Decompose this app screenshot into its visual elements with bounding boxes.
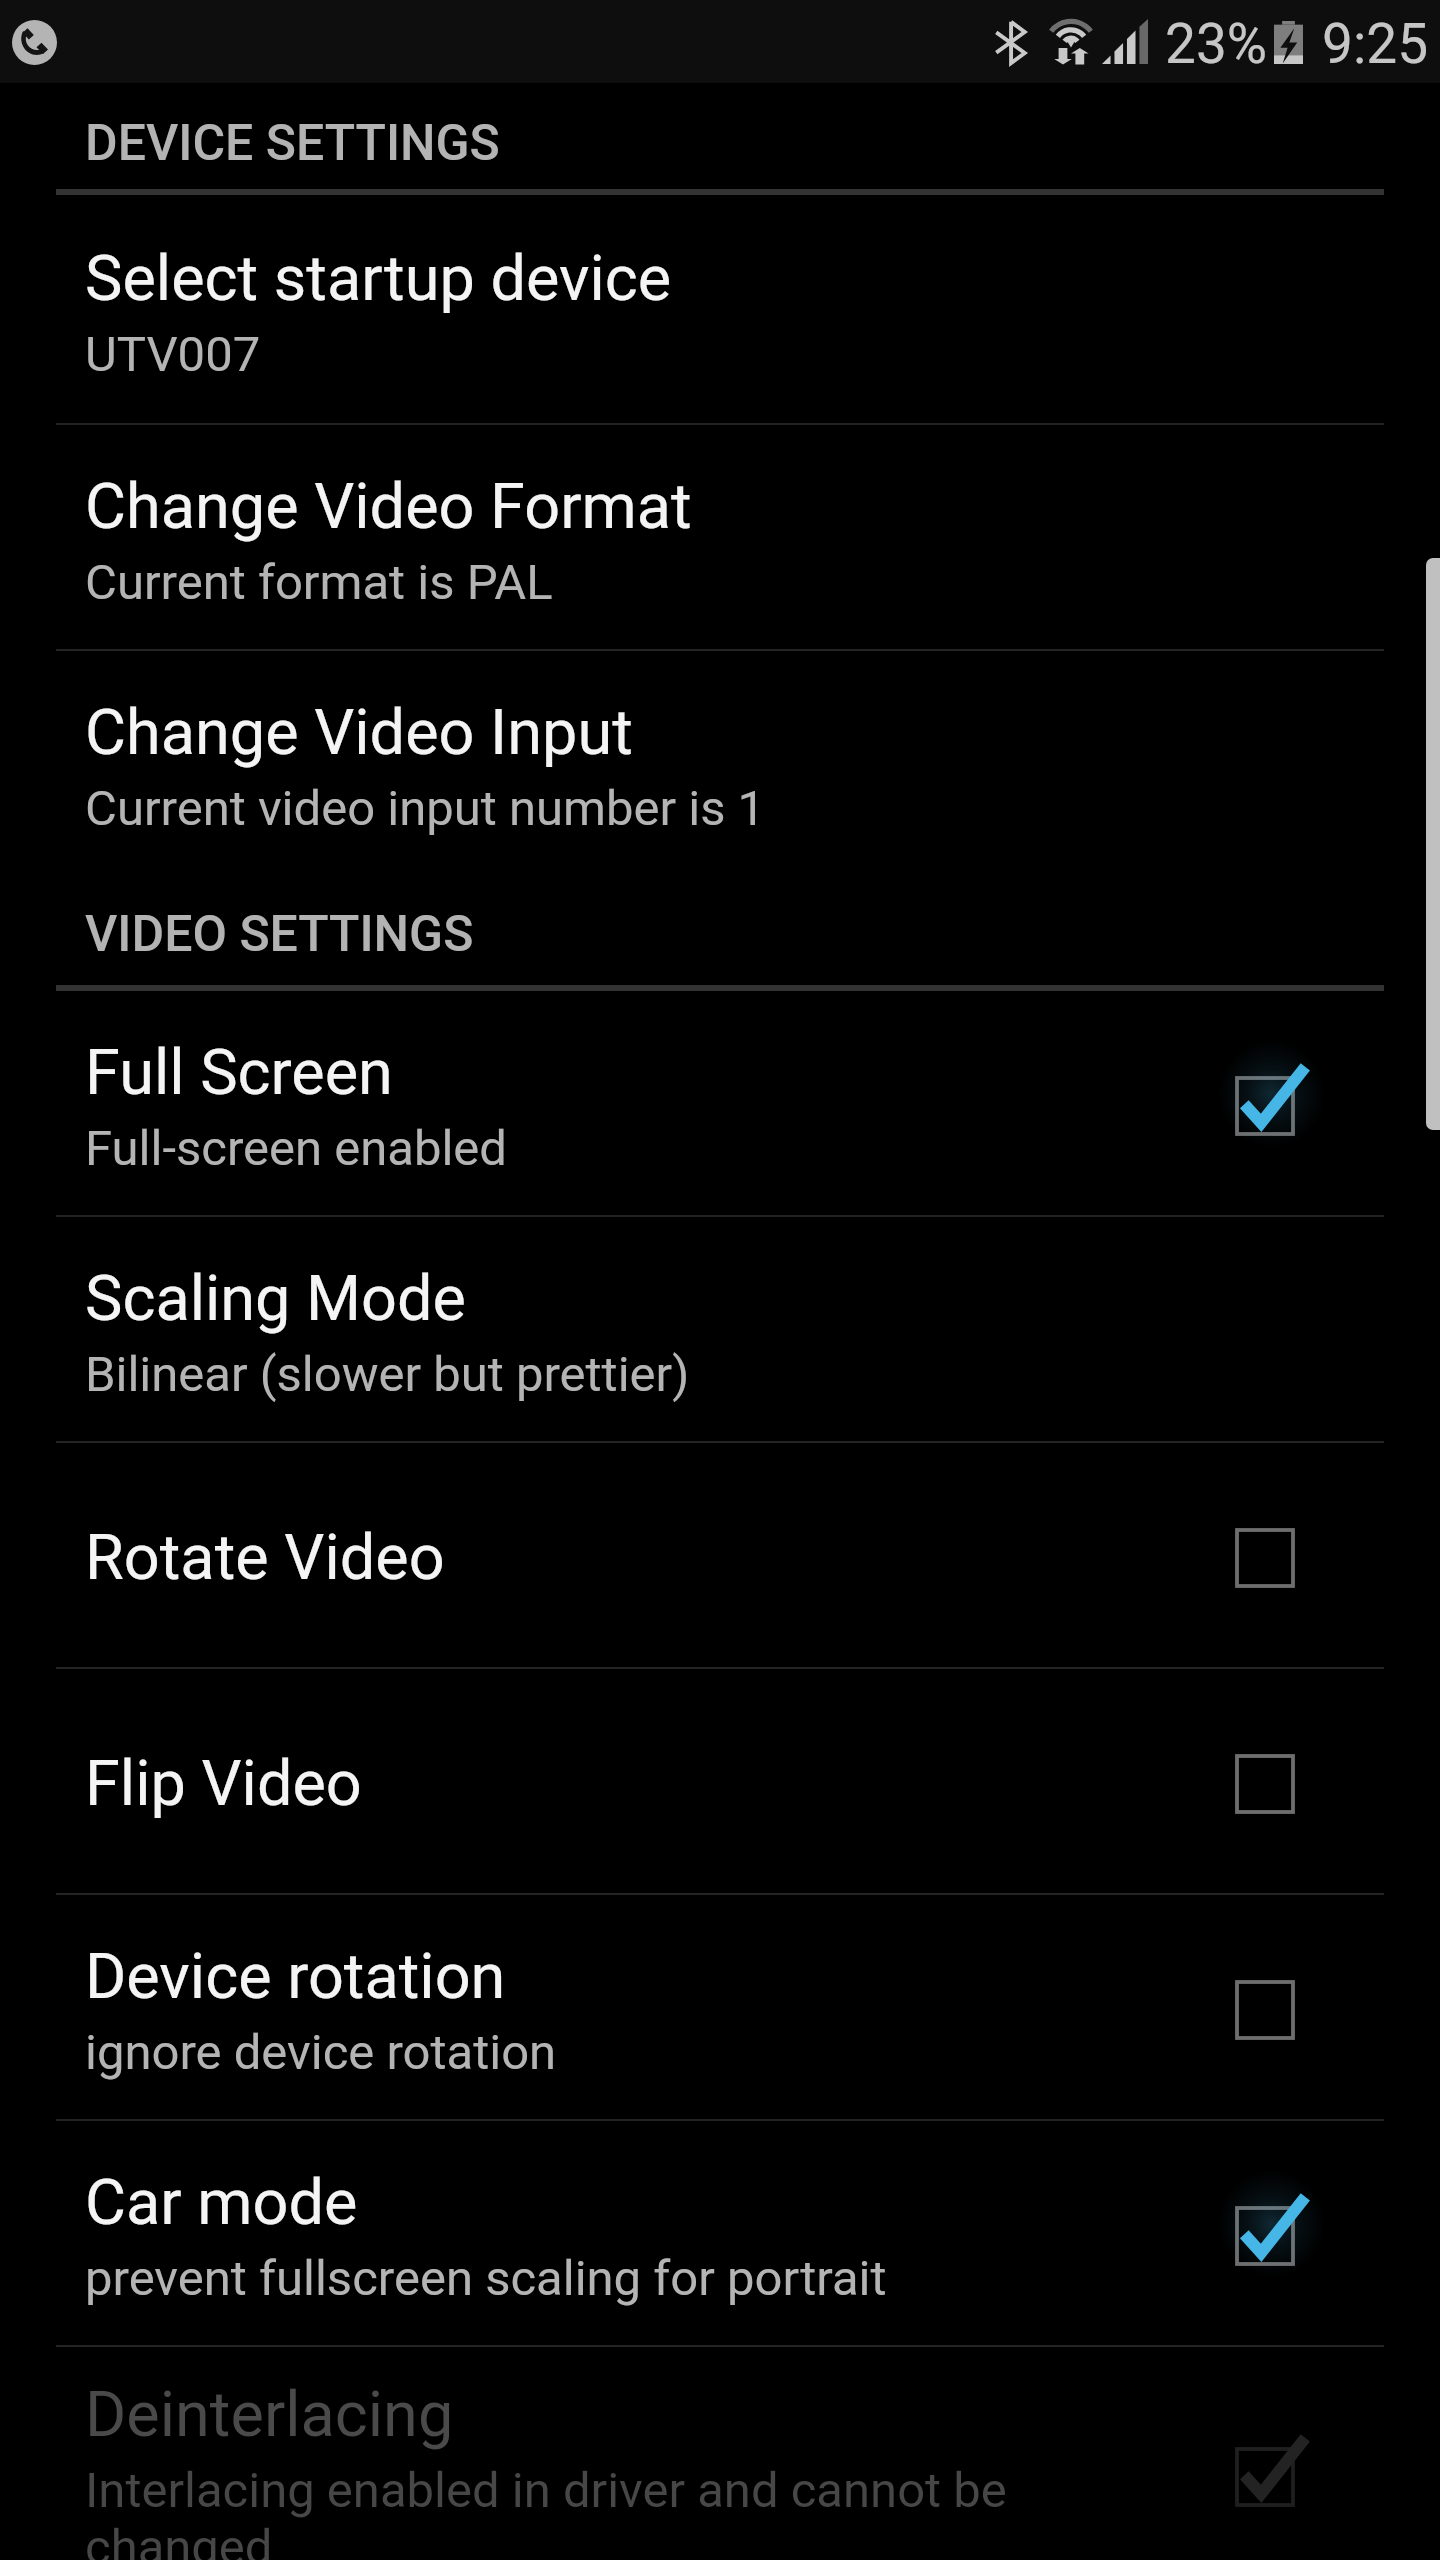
staticText: Change Video Input — [85, 696, 633, 770]
button[interactable]: Full Screen — [0, 991, 1440, 1215]
staticText: Interlacing enabled in driver and cannot… — [85, 2462, 1007, 2560]
other: Mobile signal — [1102, 19, 1148, 64]
staticText: Current video input number is 1 — [85, 780, 766, 837]
staticText: UTV007 — [85, 326, 261, 383]
staticText: Current format is PAL — [85, 554, 553, 611]
button[interactable]: Car mode — [0, 2121, 1440, 2345]
button[interactable]: Flip Video — [0, 1669, 1440, 1893]
staticText: prevent fullscreen scaling for portrait — [85, 2250, 887, 2307]
button[interactable]: Select startup device — [0, 195, 1440, 423]
staticText: 9:25 — [1322, 12, 1429, 76]
button[interactable]: Rotate Video, not checked — [1235, 1510, 1355, 1606]
button[interactable]: Rotate Video — [0, 1443, 1440, 1667]
other: Bluetooth on — [996, 21, 1025, 64]
other: Wi-Fi connected — [1051, 14, 1091, 60]
staticText: DEVICE SETTINGS — [85, 114, 500, 173]
staticText: ignore device rotation — [85, 2024, 557, 2081]
staticText: Full Screen — [85, 1036, 393, 1110]
staticText: Device rotation — [85, 1940, 506, 2014]
staticText: Select startup device — [85, 242, 672, 316]
staticText: Change Video Format — [85, 470, 692, 544]
button[interactable]: Deinterlacing, checked — [1235, 2429, 1355, 2525]
staticText: Scaling Mode — [85, 1262, 466, 1336]
staticText: Rotate Video — [85, 1521, 445, 1595]
button[interactable]: Scaling Mode — [0, 1217, 1440, 1441]
button[interactable]: Device rotation, not checked — [1235, 1962, 1355, 2058]
staticText: 23% — [1165, 12, 1268, 76]
button[interactable]: Car mode, checked — [1235, 2188, 1355, 2284]
staticText: VIDEO SETTINGS — [85, 905, 474, 964]
other: Battery charging, 23 percent — [1274, 21, 1303, 64]
button[interactable]: Deinterlacing — [0, 2347, 1440, 2560]
staticText: Flip Video — [85, 1747, 362, 1821]
button[interactable]: Change Video Input — [0, 651, 1440, 875]
other: Ongoing call — [12, 20, 57, 65]
button[interactable]: Full Screen, checked — [1235, 1058, 1355, 1154]
staticText: Deinterlacing — [85, 2378, 454, 2452]
button[interactable]: Flip Video, not checked — [1235, 1736, 1355, 1832]
staticText: Full-screen enabled — [85, 1120, 507, 1177]
button[interactable]: Change Video Format — [0, 425, 1440, 649]
staticText: Car mode — [85, 2166, 358, 2240]
button[interactable]: Device rotation — [0, 1895, 1440, 2119]
staticText: Bilinear (slower but prettier) — [85, 1346, 690, 1403]
